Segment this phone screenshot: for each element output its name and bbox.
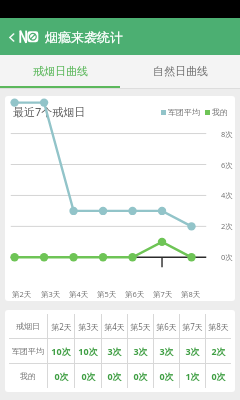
staticText: 2次 bbox=[221, 221, 233, 231]
staticText: 4次 bbox=[221, 190, 233, 200]
staticText: 1次 bbox=[185, 370, 200, 382]
staticText: 0次 bbox=[54, 370, 69, 382]
staticText: 第2天 bbox=[12, 289, 32, 299]
staticText: 最近7个戒烟日 bbox=[13, 104, 86, 119]
staticText: 10次 bbox=[78, 345, 98, 357]
staticText: 0次 bbox=[81, 370, 96, 382]
staticText: 0次 bbox=[107, 370, 122, 382]
staticText: 第7天 bbox=[182, 321, 203, 332]
staticText: 军团平均 bbox=[12, 346, 44, 356]
button[interactable]: 戒烟日曲线 bbox=[0, 55, 120, 86]
staticText: 2次 bbox=[211, 345, 226, 357]
staticText: 8次 bbox=[221, 129, 233, 139]
staticText: 自然日曲线 bbox=[153, 64, 208, 78]
staticText: 第7天 bbox=[153, 289, 173, 299]
staticText: 3次 bbox=[159, 345, 174, 357]
staticText: 我的 bbox=[20, 371, 36, 381]
staticText: 第6天 bbox=[125, 289, 145, 299]
staticText: 第5天 bbox=[97, 289, 117, 299]
staticText: 第4天 bbox=[104, 321, 125, 332]
staticText: 军团平均 bbox=[168, 107, 200, 117]
staticText: 10次 bbox=[51, 345, 71, 357]
staticText: 第3天 bbox=[41, 289, 61, 299]
staticText: 3次 bbox=[133, 345, 148, 357]
staticText: 烟瘾来袭统计 bbox=[45, 29, 123, 45]
staticText: 0次 bbox=[211, 370, 226, 382]
staticText: 3次 bbox=[107, 345, 122, 357]
staticText: 戒烟日曲线 bbox=[33, 64, 88, 78]
staticText: 第5天 bbox=[130, 321, 151, 332]
staticText: 第2天 bbox=[51, 321, 72, 332]
staticText: 3次 bbox=[185, 345, 200, 357]
staticText: 第8天 bbox=[208, 321, 229, 332]
staticText: 第8天 bbox=[181, 289, 201, 299]
button[interactable]: 自然日曲线 bbox=[120, 55, 240, 86]
staticText: 我的 bbox=[212, 107, 228, 117]
button[interactable]: Back bbox=[3, 29, 19, 45]
staticText: 第6天 bbox=[156, 321, 177, 332]
staticText: 第4天 bbox=[69, 289, 89, 299]
staticText: 0次 bbox=[221, 252, 233, 262]
staticText: 第3天 bbox=[78, 321, 99, 332]
staticText: 6次 bbox=[221, 160, 233, 170]
staticText: 0次 bbox=[159, 370, 174, 382]
staticText: 0次 bbox=[133, 370, 148, 382]
staticText: 戒烟日 bbox=[16, 321, 40, 331]
